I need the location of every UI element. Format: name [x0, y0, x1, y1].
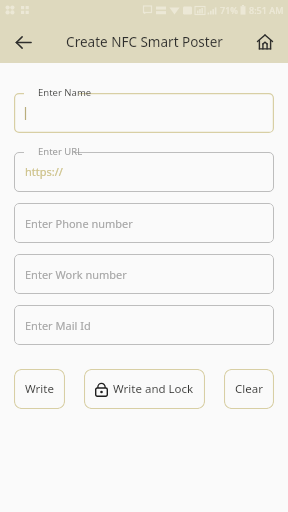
staticText: 71% — [220, 4, 238, 16]
button[interactable]: Write — [14, 369, 65, 409]
staticText: Enter Phone number — [25, 216, 133, 231]
button[interactable] — [14, 152, 274, 192]
button[interactable]: Clear — [224, 369, 274, 409]
button[interactable]: Home — [248, 25, 282, 59]
button[interactable]: Enter Work number — [14, 254, 274, 294]
button[interactable]: Enter Phone number — [14, 203, 274, 243]
button[interactable]: Back — [6, 25, 40, 59]
button[interactable] — [14, 93, 274, 133]
staticText: Enter URL — [38, 145, 83, 158]
staticText: 8:51 AM — [249, 4, 284, 16]
staticText: Enter Name — [38, 86, 92, 99]
staticText: Create NFC Smart Poster — [66, 33, 223, 51]
staticText: https:// — [25, 164, 63, 179]
staticText: Enter Mail Id — [25, 318, 91, 333]
staticText: Write and Lock — [113, 381, 194, 397]
button[interactable]: Enter Mail Id — [14, 305, 274, 345]
staticText: Write — [25, 381, 54, 397]
staticText: Clear — [235, 381, 263, 397]
staticText: Enter Work number — [25, 267, 127, 282]
button[interactable]: Write and Lock — [84, 369, 205, 409]
